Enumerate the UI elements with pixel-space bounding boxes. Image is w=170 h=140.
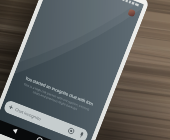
button[interactable]: Back [7, 124, 23, 140]
staticText: This is a high risk person with encrypti… [18, 81, 94, 117]
staticText: You started an incognito chat with Kim [24, 75, 94, 107]
button[interactable]: Profile [127, 8, 136, 17]
button[interactable]: Chat incognito [3, 99, 89, 140]
staticText: Chat incognito [14, 107, 42, 122]
button[interactable]: Home [31, 134, 47, 140]
